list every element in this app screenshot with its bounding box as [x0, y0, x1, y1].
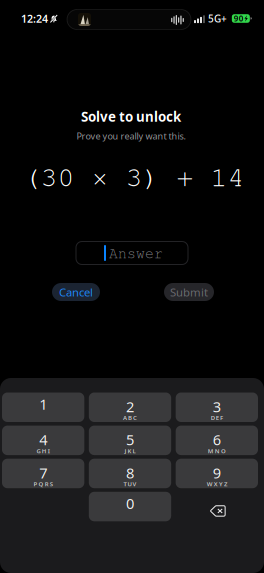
- staticText: 2: [126, 397, 134, 417]
- button[interactable]: 4: [2, 426, 84, 455]
- button[interactable]: 9: [176, 459, 258, 488]
- button[interactable]: 7: [2, 459, 84, 488]
- button[interactable]: 2: [89, 392, 171, 422]
- staticText: 90: [234, 13, 244, 24]
- button[interactable]: Delete: [176, 492, 258, 521]
- staticText: TUV: [123, 480, 137, 488]
- staticText: Prove you really want this.: [76, 130, 185, 142]
- staticText: 5G+: [208, 12, 227, 25]
- staticText: 1: [39, 394, 47, 414]
- staticText: 12:24: [21, 11, 48, 26]
- staticText: DEF: [211, 414, 223, 422]
- staticText: Answer: [109, 244, 163, 262]
- button[interactable]: 5: [89, 426, 171, 455]
- staticText: 4: [39, 430, 47, 450]
- button[interactable]: Cancel: [52, 283, 100, 301]
- staticText: JKL: [124, 447, 136, 455]
- staticText: MNO: [208, 447, 226, 455]
- staticText: (30 × 3) + 14: [23, 160, 244, 193]
- staticText: 5: [126, 430, 134, 450]
- button[interactable]: 8: [89, 459, 171, 488]
- button[interactable]: 1: [2, 392, 84, 422]
- button[interactable]: 6: [176, 426, 258, 455]
- staticText: Cancel: [59, 284, 93, 300]
- staticText: WXYZ: [207, 480, 227, 488]
- staticText: GHI: [37, 447, 50, 455]
- staticText: 7: [39, 463, 47, 483]
- staticText: 8: [126, 463, 134, 483]
- button[interactable]: 0: [89, 492, 171, 521]
- staticText: 3: [213, 397, 221, 417]
- button[interactable]: 3: [176, 392, 258, 422]
- staticText: Submit: [170, 284, 208, 300]
- staticText: PQRS: [33, 480, 53, 488]
- staticText: Solve to unlock: [81, 107, 181, 126]
- button[interactable]: Submit: [164, 283, 214, 301]
- staticText: 6: [213, 430, 221, 450]
- staticText: 9: [213, 463, 221, 483]
- staticText: 0: [126, 493, 134, 513]
- staticText: ABC: [123, 414, 137, 422]
